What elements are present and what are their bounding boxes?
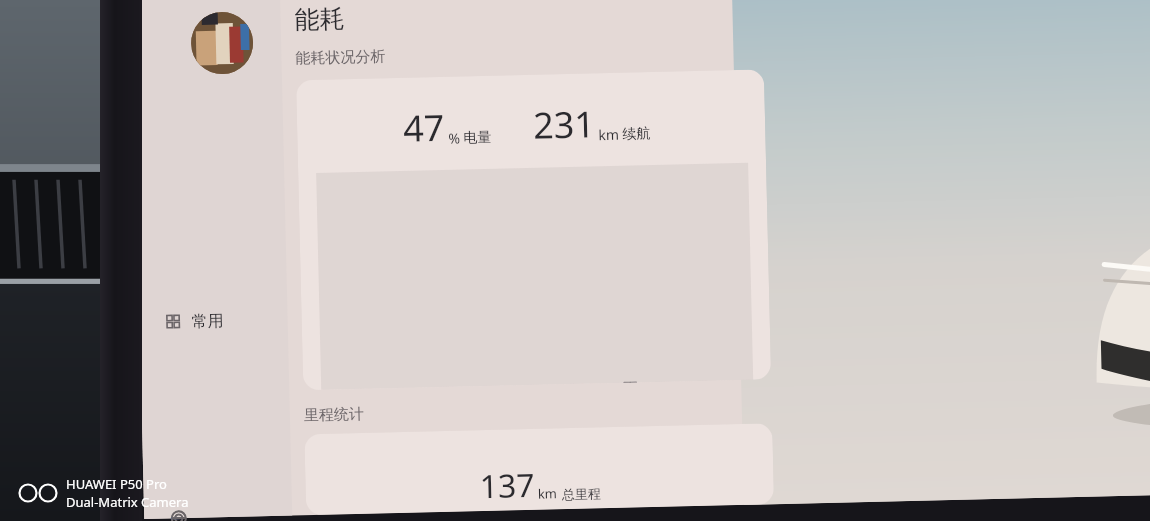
staticText: 总里程 xyxy=(562,485,601,502)
staticText: 47 xyxy=(403,103,446,153)
staticText: 电量 xyxy=(463,129,492,147)
button[interactable]: 137 xyxy=(304,423,774,515)
staticText: % xyxy=(448,128,461,148)
staticText: HUAWEI P50 Pro xyxy=(66,475,167,493)
staticText: 能耗状况分析 xyxy=(295,47,386,68)
staticText: Dual-Matrix Camera xyxy=(66,493,189,511)
staticText: 常用 xyxy=(191,311,224,332)
staticText: 137 xyxy=(479,463,535,508)
staticText: km xyxy=(598,125,619,144)
staticText: km xyxy=(538,484,558,503)
staticText: 里程统计 xyxy=(304,405,364,425)
button[interactable]: 常用 xyxy=(161,123,292,518)
staticText: 231 xyxy=(532,99,596,150)
staticText: 续航 xyxy=(622,125,650,144)
button[interactable]: 47 xyxy=(296,69,771,390)
staticText: 能耗 xyxy=(294,3,345,35)
button[interactable]: Profile xyxy=(190,11,254,75)
